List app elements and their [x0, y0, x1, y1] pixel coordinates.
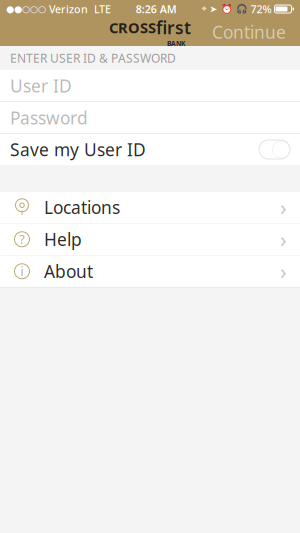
staticText: Password: [10, 106, 88, 129]
staticText: first: [156, 16, 191, 39]
button[interactable]: Save my User ID: [0, 134, 300, 165]
button[interactable]: i: [0, 255, 300, 287]
staticText: 🎧: [235, 4, 247, 14]
staticText: i: [20, 263, 23, 279]
staticText: ➤: [209, 4, 217, 14]
staticText: ⏰: [220, 4, 232, 14]
staticText: User ID: [10, 74, 72, 97]
staticText: About: [44, 260, 93, 283]
staticText: Verizon LTE: [46, 2, 111, 16]
button[interactable]: Locations: [0, 191, 300, 223]
staticText: SS: [140, 18, 156, 37]
staticText: Help: [44, 228, 82, 251]
staticText: BANK: [167, 39, 185, 48]
staticText: 72%: [250, 2, 271, 16]
staticText: ›: [280, 225, 287, 253]
staticText: ●●○○○: [6, 4, 46, 14]
staticText: ENTER USER ID & PASSWORD: [10, 50, 176, 66]
staticText: CR: [109, 18, 128, 37]
staticText: Locations: [44, 196, 120, 219]
staticText: ›: [280, 193, 287, 221]
staticText: Save my User ID: [10, 138, 146, 161]
staticText: ›: [280, 257, 287, 285]
staticText: 8:26 AM: [136, 2, 177, 16]
staticText: O: [128, 18, 140, 37]
staticText: ⌖: [201, 4, 206, 13]
button[interactable]: ?: [0, 223, 300, 255]
staticText: ?: [19, 231, 24, 247]
button[interactable]: Continue: [202, 14, 296, 49]
staticText: Continue: [212, 20, 286, 43]
